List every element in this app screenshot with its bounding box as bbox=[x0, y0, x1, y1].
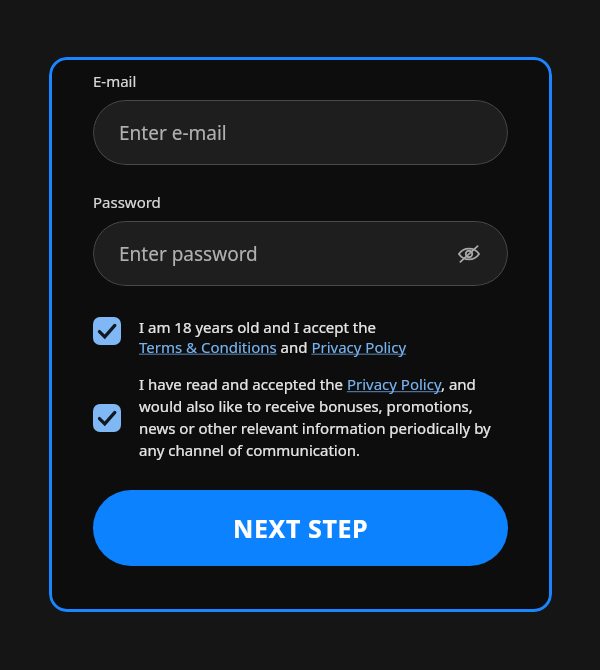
button[interactable]: Checked bbox=[93, 374, 508, 461]
button[interactable]: Enter password bbox=[93, 221, 508, 286]
button[interactable]: Enter e-mail bbox=[93, 100, 508, 165]
button[interactable]: Checked bbox=[93, 317, 508, 357]
staticText: Terms & Conditions and Privacy Policy bbox=[139, 337, 407, 357]
staticText: NEXT STEP bbox=[233, 511, 369, 545]
staticText: I have read and accepted the Privacy Pol… bbox=[139, 374, 508, 461]
staticText: I am 18 years old and I accept the bbox=[139, 317, 377, 337]
button[interactable]: NEXT STEP bbox=[93, 490, 508, 566]
staticText: Enter e-mail bbox=[119, 120, 486, 146]
staticText: E-mail bbox=[93, 71, 137, 91]
other: Checked bbox=[93, 404, 121, 432]
other: Checked bbox=[93, 317, 121, 345]
staticText: Enter password bbox=[119, 241, 452, 267]
button[interactable]: Show password bbox=[452, 237, 486, 271]
staticText: Password bbox=[93, 192, 161, 212]
